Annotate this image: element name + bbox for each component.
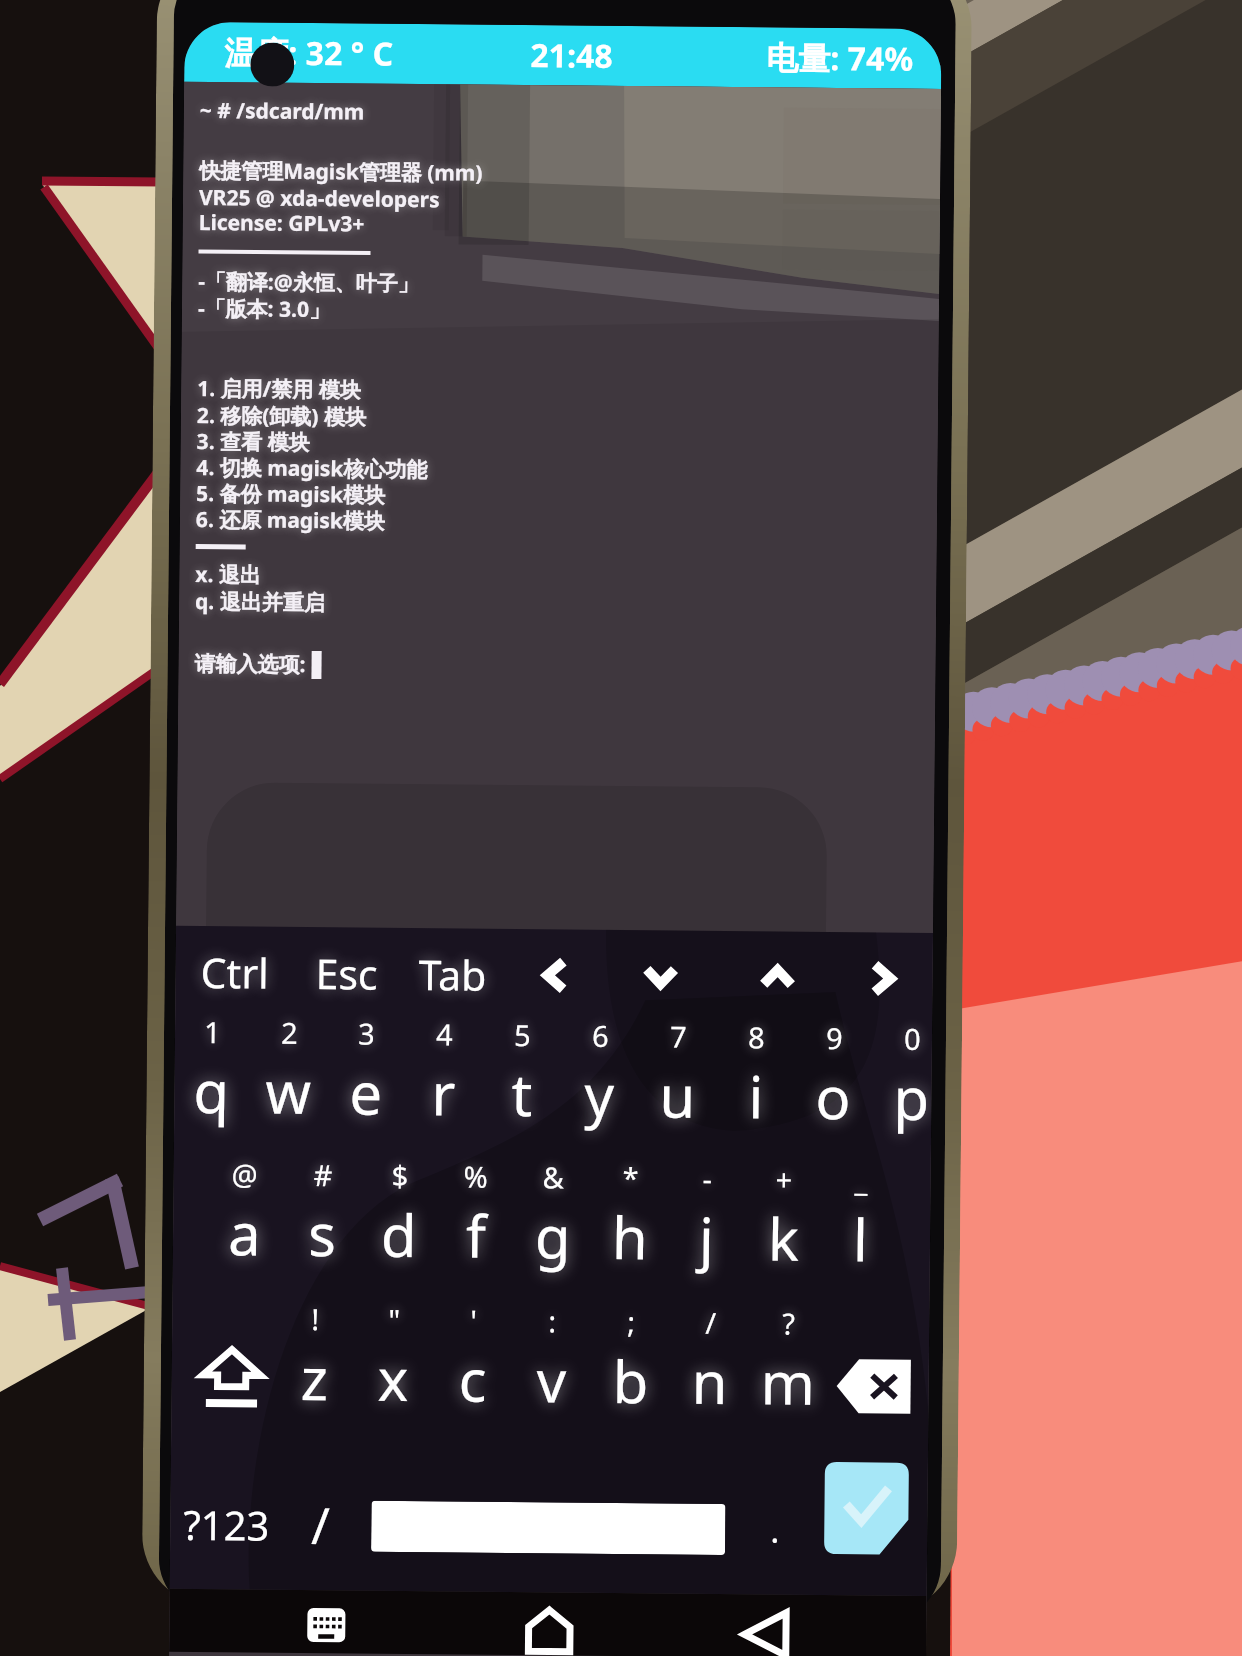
button[interactable]: 3 <box>326 1013 405 1136</box>
staticText: z <box>300 1338 329 1417</box>
staticText: x <box>377 1339 409 1418</box>
staticText: u <box>659 1055 696 1135</box>
button[interactable]: Shift <box>179 1330 284 1431</box>
button[interactable]: + <box>745 1159 823 1282</box>
button[interactable]: 9 <box>794 1018 873 1140</box>
staticText: 9 <box>826 1018 843 1057</box>
button[interactable]: & <box>514 1157 592 1280</box>
button[interactable]: / <box>669 1302 749 1425</box>
button[interactable]: up <box>718 931 836 1024</box>
staticText: j <box>699 1198 714 1277</box>
button[interactable]: * <box>591 1158 669 1280</box>
staticText: p <box>893 1058 930 1137</box>
staticText: -「翻译:@永恒、叶子」 -「版本: 3.0」 <box>198 267 419 324</box>
staticText: r <box>431 1053 456 1132</box>
staticText: g <box>535 1196 571 1275</box>
button[interactable]: Hide keyboard <box>303 1608 349 1654</box>
staticText: _ <box>854 1160 868 1199</box>
button[interactable]: Ctrl <box>175 926 295 1019</box>
staticText: & <box>542 1157 565 1196</box>
staticText: @ <box>231 1154 259 1194</box>
staticText: e <box>349 1052 383 1132</box>
button[interactable]: . <box>730 1473 821 1586</box>
button[interactable]: 2 <box>249 1012 327 1135</box>
staticText: Tab <box>418 946 487 1003</box>
button[interactable]: ; <box>590 1302 670 1424</box>
button[interactable]: 0 <box>872 1018 932 1141</box>
staticText: m <box>760 1342 816 1422</box>
staticText: : <box>548 1301 556 1340</box>
staticText: a <box>228 1193 261 1272</box>
staticText: " <box>388 1300 400 1339</box>
button[interactable]: right <box>835 932 933 1025</box>
staticText: v <box>536 1340 567 1419</box>
staticText: ; <box>627 1302 635 1341</box>
staticText: ' <box>470 1301 477 1340</box>
button[interactable]: Enter <box>824 1462 909 1555</box>
staticText: k <box>768 1198 799 1278</box>
staticText: f <box>466 1195 486 1275</box>
staticText: 21:48 <box>530 33 614 78</box>
button[interactable]: # <box>283 1155 361 1277</box>
button[interactable]: ?123 <box>170 1468 283 1581</box>
button[interactable]: 5 <box>482 1015 561 1137</box>
staticText: 0 <box>904 1019 921 1058</box>
staticText: x. 退出 q. 退出并重启 <box>195 560 325 616</box>
staticText: - <box>702 1159 713 1198</box>
button[interactable]: _ <box>822 1160 900 1283</box>
staticText: . <box>770 1506 780 1553</box>
button[interactable]: ' <box>432 1300 512 1423</box>
staticText: 2 <box>281 1013 298 1052</box>
staticText: 8 <box>748 1017 765 1056</box>
staticText: o <box>815 1057 852 1136</box>
button[interactable]: Backspace <box>821 1336 926 1437</box>
button[interactable]: Tab <box>399 928 505 1021</box>
staticText: i <box>748 1056 764 1135</box>
button[interactable]: Home <box>523 1608 575 1656</box>
staticText: Ctrl <box>200 944 270 1001</box>
staticText: + <box>775 1159 793 1199</box>
staticText: / <box>311 1491 331 1559</box>
staticText: 请输入选项: <box>194 649 312 679</box>
button[interactable]: $ <box>360 1155 438 1278</box>
button[interactable]: : <box>511 1301 591 1424</box>
button[interactable]: 6 <box>560 1015 639 1138</box>
staticText: h <box>612 1197 648 1276</box>
staticText: 3 <box>358 1013 375 1053</box>
staticText: / <box>705 1303 716 1342</box>
staticText: w <box>265 1052 312 1131</box>
staticText: % <box>463 1156 489 1196</box>
button[interactable]: @ <box>206 1154 284 1277</box>
button[interactable]: Space <box>358 1469 731 1585</box>
button[interactable]: - <box>668 1158 746 1281</box>
button[interactable]: left <box>504 929 602 1022</box>
button[interactable]: " <box>353 1299 433 1422</box>
staticText: 温度: 32 ° C <box>224 30 394 76</box>
staticText: y <box>584 1055 615 1134</box>
staticText: 5 <box>514 1015 531 1054</box>
staticText: n <box>691 1342 728 1421</box>
button[interactable]: Esc <box>294 927 400 1020</box>
button[interactable]: 7 <box>638 1016 717 1139</box>
button[interactable]: Back <box>739 1610 791 1656</box>
button[interactable]: / <box>282 1469 359 1581</box>
button[interactable]: 8 <box>716 1017 795 1140</box>
button[interactable]: 1 <box>174 1012 250 1134</box>
staticText: s <box>308 1194 336 1273</box>
staticText: Esc <box>315 945 379 1002</box>
button[interactable]: % <box>437 1156 515 1279</box>
staticText: 1. 启用/禁用 模块 2. 移除(卸载) 模块 3. 查看 模块 4. 切换 … <box>196 374 428 535</box>
staticText: 1 <box>204 1012 221 1051</box>
staticText: ? <box>782 1304 795 1343</box>
button[interactable]: 4 <box>404 1014 483 1137</box>
button[interactable]: ! <box>274 1299 354 1421</box>
button[interactable]: ? <box>748 1303 828 1426</box>
staticText: t <box>511 1054 533 1133</box>
staticText: 7 <box>670 1016 687 1056</box>
staticText: # <box>313 1155 333 1194</box>
staticText: c <box>458 1339 487 1419</box>
staticText: ~ # /sdcard/mm <box>200 96 365 126</box>
staticText: 6 <box>592 1016 609 1055</box>
button[interactable]: down <box>601 930 719 1023</box>
staticText: 快捷管理Magisk管理器 (mm) VR25 @ xda-developers… <box>199 156 483 239</box>
